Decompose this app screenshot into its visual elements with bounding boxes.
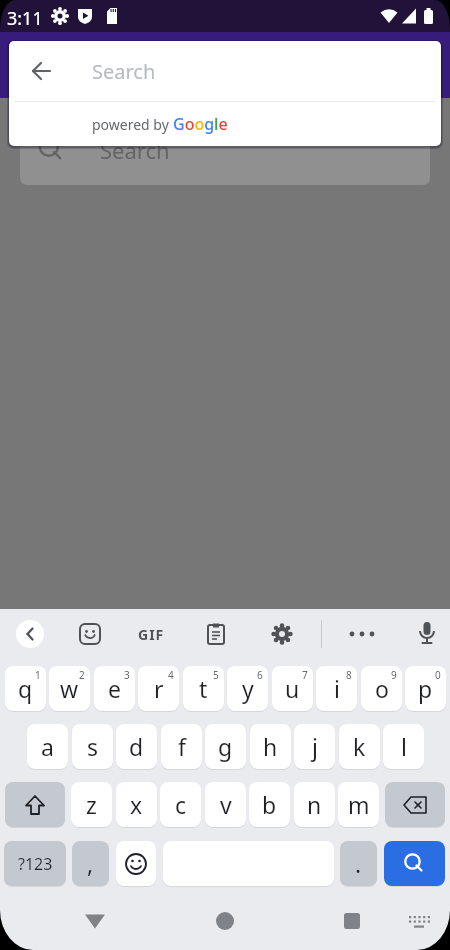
button[interactable] xyxy=(29,59,53,83)
button[interactable]: x xyxy=(116,782,157,827)
staticText: 9 xyxy=(391,668,397,682)
staticText: f xyxy=(178,731,186,762)
button[interactable]: p xyxy=(405,666,446,711)
button[interactable]: n xyxy=(294,782,335,827)
button[interactable]: o xyxy=(361,666,402,711)
button[interactable] xyxy=(204,622,228,646)
staticText: m xyxy=(348,789,370,820)
button[interactable]: GIF xyxy=(134,622,168,646)
staticText: , xyxy=(87,848,94,879)
staticText: 5 xyxy=(213,668,219,682)
staticText: 3 xyxy=(124,668,130,682)
button[interactable]: j xyxy=(294,724,335,769)
staticText: n xyxy=(307,789,322,820)
button[interactable]: z xyxy=(71,782,112,827)
staticText: c xyxy=(175,789,187,820)
button[interactable]: . xyxy=(340,841,377,886)
button[interactable] xyxy=(116,841,156,886)
staticText: 1 xyxy=(35,668,41,682)
staticText: 3:11 xyxy=(7,6,43,31)
button[interactable]: k xyxy=(339,724,380,769)
staticText: i xyxy=(334,673,340,704)
staticText: k xyxy=(353,731,366,762)
button[interactable] xyxy=(384,841,445,886)
button[interactable] xyxy=(75,905,115,937)
button[interactable]: s xyxy=(72,724,113,769)
button[interactable] xyxy=(385,782,445,827)
staticText: p xyxy=(418,673,433,704)
staticText: g xyxy=(218,731,233,762)
staticText: 8 xyxy=(346,668,352,682)
staticText: GIF xyxy=(138,625,165,644)
staticText: e xyxy=(108,673,121,704)
button[interactable]: y xyxy=(227,666,268,711)
staticText: l xyxy=(401,731,407,762)
button[interactable]: h xyxy=(250,724,291,769)
staticText: b xyxy=(262,789,277,820)
staticText: w xyxy=(60,673,79,704)
staticText: 7 xyxy=(302,668,308,682)
button[interactable] xyxy=(405,910,433,934)
button[interactable]: t xyxy=(183,666,224,711)
staticText: a xyxy=(41,731,54,762)
staticText: z xyxy=(86,789,97,820)
button[interactable] xyxy=(5,782,65,827)
staticText: 6 xyxy=(257,668,263,682)
button[interactable]: l xyxy=(383,724,424,769)
staticText: 0 xyxy=(435,668,441,682)
staticText: Google xyxy=(173,113,228,135)
button[interactable]: g xyxy=(205,724,246,769)
staticText: 4 xyxy=(168,668,174,682)
staticText: q xyxy=(18,673,33,704)
staticText: u xyxy=(285,673,300,704)
staticText: ?123 xyxy=(18,853,53,875)
button[interactable]: w xyxy=(49,666,90,711)
button[interactable]: u xyxy=(272,666,313,711)
staticText: v xyxy=(220,789,232,820)
staticText: Search xyxy=(100,135,170,165)
button[interactable]: q xyxy=(5,666,46,711)
button[interactable]: Search xyxy=(20,115,430,185)
button[interactable] xyxy=(205,905,245,937)
staticText: x xyxy=(130,789,143,820)
button[interactable] xyxy=(16,620,44,648)
button[interactable]: v xyxy=(205,782,246,827)
button[interactable] xyxy=(348,622,376,646)
staticText: powered by xyxy=(92,115,173,134)
button[interactable]: d xyxy=(116,724,157,769)
button[interactable] xyxy=(270,622,294,646)
staticText: d xyxy=(129,731,144,762)
staticText: s xyxy=(87,731,99,762)
button[interactable]: c xyxy=(160,782,201,827)
staticText: h xyxy=(263,731,278,762)
button[interactable]: , xyxy=(72,841,109,886)
staticText: t xyxy=(199,673,208,704)
button[interactable]: a xyxy=(27,724,68,769)
button[interactable]: Search xyxy=(9,41,441,101)
button[interactable]: ?123 xyxy=(4,841,66,886)
staticText: o xyxy=(375,673,389,704)
staticText: . xyxy=(355,848,362,879)
button[interactable]: f xyxy=(161,724,202,769)
button[interactable]: m xyxy=(338,782,379,827)
staticText: 2 xyxy=(79,668,85,682)
button[interactable]: r xyxy=(138,666,179,711)
staticText: Search xyxy=(92,58,156,85)
button[interactable]: i xyxy=(316,666,357,711)
button[interactable] xyxy=(332,905,372,937)
button[interactable]: e xyxy=(94,666,135,711)
button[interactable]: b xyxy=(249,782,290,827)
button[interactable]: powered by xyxy=(9,102,441,146)
button[interactable] xyxy=(78,622,102,646)
staticText: j xyxy=(312,731,318,762)
staticText: y xyxy=(242,673,254,704)
button[interactable] xyxy=(415,620,439,648)
staticText: r xyxy=(154,673,164,704)
